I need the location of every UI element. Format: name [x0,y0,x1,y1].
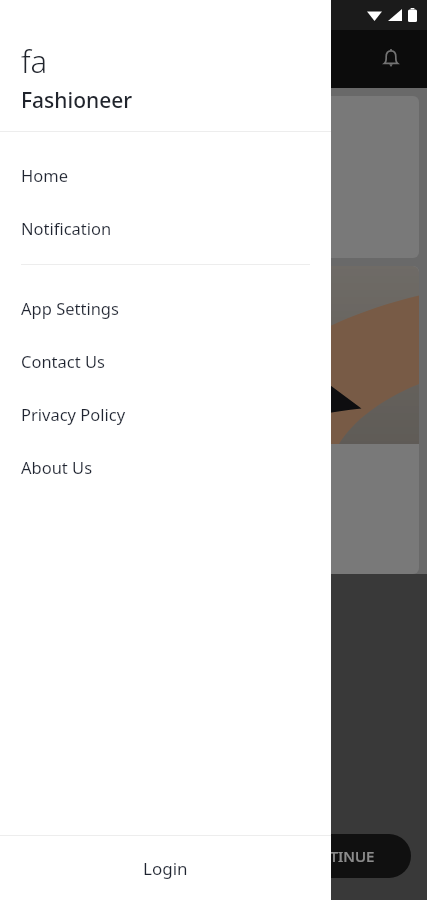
button[interactable]: About Us [0,440,331,493]
button[interactable]: Home [0,148,331,201]
button[interactable]: Notification [0,201,331,254]
staticText: App Settings [21,297,119,319]
button[interactable] [24,204,184,238]
staticText: Notification [21,217,112,239]
button[interactable]: Cashmere Warmers [8,96,419,258]
button[interactable]: Login [0,836,331,900]
button[interactable]: Contact Us [0,334,331,387]
button[interactable]: Support Elbow [8,266,419,574]
staticText: Cashmere Warmers [24,118,182,141]
staticText: Contact Us [21,350,105,372]
button[interactable]: Notifications [369,37,413,81]
staticText: Login [143,857,188,880]
button[interactable]: CONTINUE [261,834,411,878]
staticText: Privacy Policy [21,403,126,425]
staticText: fa [21,40,48,82]
staticText: Support Elbow [24,460,141,483]
staticText: Fashioneer [21,86,133,115]
staticText: CONTINUE [297,846,375,866]
button[interactable]: App Settings [0,281,331,334]
staticText: Home [21,164,68,186]
button[interactable]: Privacy Policy [0,387,331,440]
staticText: About Us [21,456,93,478]
